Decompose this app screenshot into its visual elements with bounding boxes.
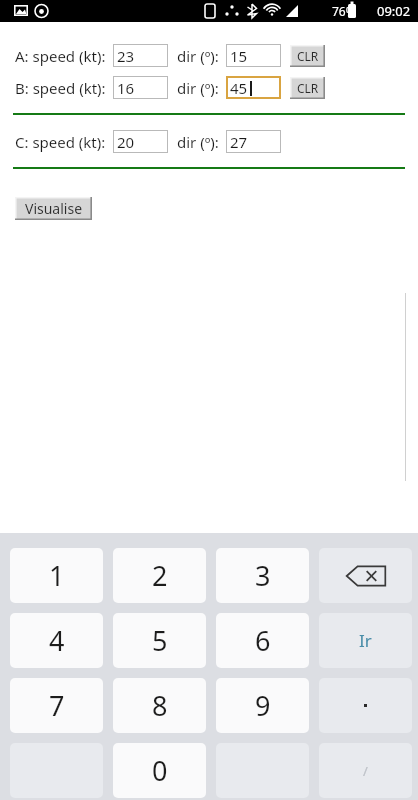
button[interactable]: 1 [10, 548, 103, 603]
button[interactable]: 16 [113, 76, 168, 99]
button[interactable]: Visualise [15, 197, 92, 220]
button[interactable]: CLR [290, 77, 325, 99]
button[interactable]: 7 [10, 678, 103, 733]
staticText: 5 [152, 622, 168, 659]
button[interactable]: 15 [226, 44, 281, 67]
staticText: Visualise [25, 199, 83, 218]
staticText: 1 [49, 557, 65, 594]
button[interactable]: 23 [113, 44, 168, 67]
staticText: dir (º): [177, 46, 219, 66]
button[interactable]: 20 [113, 130, 168, 153]
staticText: 0 [152, 752, 168, 789]
button[interactable]: 2 [113, 548, 206, 603]
button[interactable]: 0 [113, 743, 206, 798]
button[interactable]: Backspace [319, 548, 412, 603]
button[interactable]: 9 [216, 678, 309, 733]
staticText: C: speed (kt): [15, 132, 106, 152]
staticText: 27 [230, 132, 248, 152]
staticText: A: speed (kt): [15, 46, 106, 66]
button[interactable]: Go [319, 613, 412, 668]
button[interactable]: 45 [226, 76, 281, 99]
staticText: 8 [152, 687, 168, 724]
staticText: 3 [255, 557, 271, 594]
staticText: CLR [297, 80, 319, 96]
staticText: B: speed (kt): [15, 78, 106, 98]
staticText: 76% [332, 3, 356, 19]
staticText: 2 [152, 557, 168, 594]
staticText: dir (º): [177, 132, 219, 152]
button[interactable]: 5 [113, 613, 206, 668]
button[interactable]: 6 [216, 613, 309, 668]
staticText: 4 [49, 622, 65, 659]
staticText: 16 [117, 78, 135, 98]
staticText: 20 [117, 132, 135, 152]
button[interactable]: 27 [226, 130, 281, 153]
button[interactable]: 4 [10, 613, 103, 668]
staticText: 45 [230, 78, 248, 98]
button[interactable]: 8 [113, 678, 206, 733]
staticText: dir (º): [177, 78, 219, 98]
button[interactable]: Period [319, 678, 412, 733]
staticText: CLR [297, 48, 319, 64]
button[interactable]: 3 [216, 548, 309, 603]
staticText: 23 [117, 46, 135, 66]
staticText: 09:02 [377, 2, 411, 20]
button[interactable]: CLR [290, 45, 325, 67]
staticText: 15 [230, 46, 248, 66]
staticText: 9 [255, 687, 271, 724]
staticText: 6 [255, 622, 271, 659]
staticText: 7 [49, 687, 65, 724]
staticText: Ir [359, 629, 372, 652]
staticText: / [363, 762, 368, 780]
